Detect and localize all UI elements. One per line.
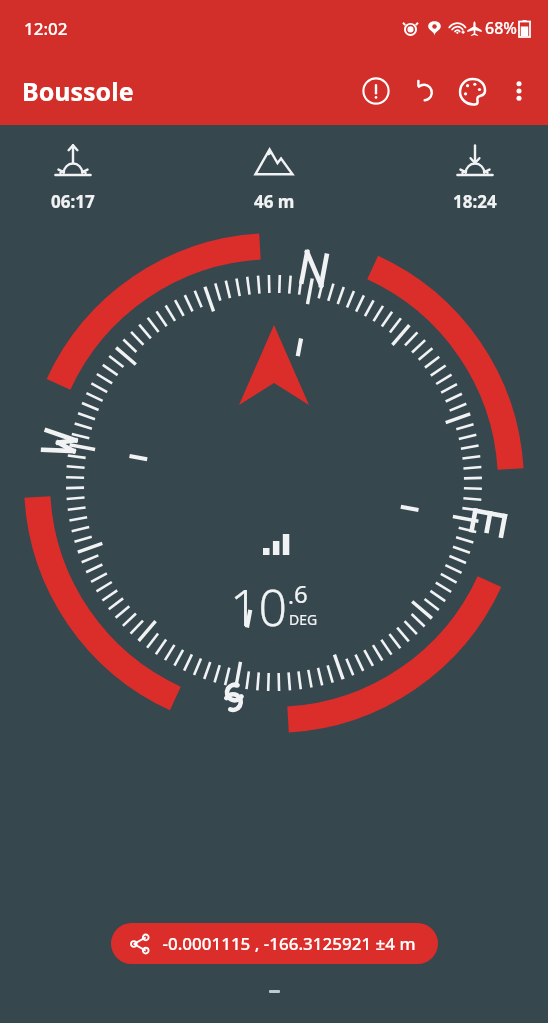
staticText: 10 <box>230 573 288 641</box>
button[interactable]: 18:24 <box>428 143 522 213</box>
staticText: 18:24 <box>453 190 497 213</box>
button[interactable]: 10 <box>0 213 548 753</box>
button[interactable]: -0.0001115 , -166.3125921 ±4 m <box>111 923 438 964</box>
staticText: Boussole <box>22 74 134 108</box>
staticText: 6 <box>294 577 308 610</box>
button[interactable]: 06:17 <box>26 143 120 213</box>
button[interactable]: Reset <box>400 67 448 115</box>
staticText: DEG <box>289 610 318 629</box>
staticText: 06:17 <box>51 190 95 213</box>
staticText: . <box>288 580 294 610</box>
button[interactable]: Warning <box>352 67 400 115</box>
button[interactable]: Theme <box>448 67 496 115</box>
button[interactable]: 46 m <box>227 143 321 213</box>
staticText: -0.0001115 , -166.3125921 ±4 m <box>162 932 416 955</box>
button[interactable]: More options <box>496 68 542 114</box>
staticText: 46 m <box>254 190 295 213</box>
staticText: 12:02 <box>24 17 68 40</box>
staticText: 68% <box>485 17 517 39</box>
